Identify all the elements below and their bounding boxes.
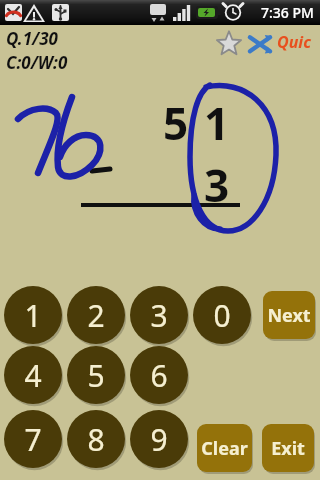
staticText: Clear [201,436,248,461]
staticText: 0 [213,295,231,336]
staticText: Exit [271,436,305,461]
button[interactable]: Clear [197,424,252,472]
button[interactable]: Next [263,291,315,339]
staticText: C:0/W:0 [6,51,68,74]
button[interactable]: Quick [277,31,317,53]
button[interactable]: Favourite [216,30,242,56]
button[interactable]: 9 [130,410,188,468]
staticText: 3 [150,295,168,336]
button[interactable]: 4 [4,346,62,404]
staticText: 9 [150,419,168,460]
staticText: 7 [24,419,42,460]
staticText: 5 [87,355,105,396]
button[interactable]: 8 [67,410,125,468]
button[interactable]: Exit [262,424,314,472]
staticText: Next [267,303,311,328]
button[interactable]: 6 [130,346,188,404]
staticText: Quick [277,31,317,53]
button[interactable]: 5 [67,346,125,404]
staticText: 3 [204,155,230,215]
button[interactable]: Shuffle [248,32,272,56]
staticText: 5 [163,93,189,153]
button[interactable]: 3 [130,286,188,344]
staticText: 6 [150,355,168,396]
staticText: 2 [87,295,105,336]
button[interactable]: 7 [4,410,62,468]
staticText: 7:36 PM [261,3,314,22]
staticText: 4 [24,355,42,396]
button[interactable]: 2 [67,286,125,344]
staticText: Q.1/30 [6,27,58,50]
staticText: 1 [24,295,42,336]
staticText: 8 [87,419,105,460]
button[interactable]: 0 [193,286,251,344]
button[interactable]: 1 [4,286,62,344]
staticText: 1 [204,93,230,153]
